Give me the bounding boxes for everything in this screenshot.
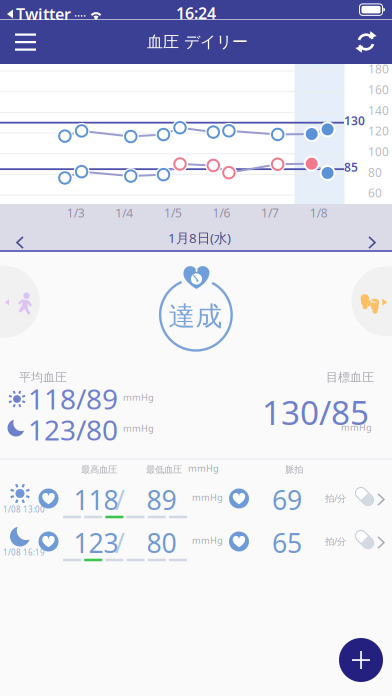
staticText: 血圧 デイリー <box>147 32 248 52</box>
staticText: 118 <box>73 482 118 517</box>
button[interactable]: 1/08 13:00 <box>0 480 392 523</box>
staticText: / <box>115 482 125 517</box>
staticText: 60 <box>368 185 382 201</box>
staticText: 1/7 <box>261 205 279 221</box>
staticText: 130/85 <box>262 390 369 434</box>
button[interactable]: Add reading <box>339 638 383 682</box>
staticText: mmHg <box>188 462 219 474</box>
staticText: 1/6 <box>212 205 230 221</box>
staticText: 1/5 <box>164 205 182 221</box>
staticText: 最低血圧 <box>146 464 182 475</box>
staticText: 1月8日(水) <box>168 229 231 247</box>
staticText: Twitter <box>16 3 71 25</box>
staticText: mmHg <box>123 422 154 434</box>
staticText: 85 <box>344 159 358 175</box>
staticText: 130 <box>344 113 365 129</box>
staticText: 100 <box>368 144 389 160</box>
staticText: 拍/分 <box>325 535 346 547</box>
button[interactable]: Next day <box>354 227 390 258</box>
staticText: mmHg <box>341 421 372 433</box>
staticText: 180 <box>368 61 389 77</box>
staticText: 1/08 16:19 <box>3 547 45 558</box>
staticText: 1/8 <box>310 205 328 221</box>
staticText: 65 <box>272 525 302 560</box>
staticText: 69 <box>272 482 302 517</box>
staticText: 80 <box>146 525 176 560</box>
staticText: 1/08 13:00 <box>3 504 45 515</box>
staticText: 123/80 <box>28 411 118 448</box>
staticText: mmHg <box>192 491 223 503</box>
staticText: 123 <box>73 525 118 560</box>
staticText: 1/3 <box>67 205 85 221</box>
staticText: 120 <box>368 123 389 139</box>
staticText: 89 <box>146 482 176 517</box>
staticText: 達成 <box>168 300 222 333</box>
staticText: / <box>115 525 125 560</box>
staticText: 80 <box>368 164 382 180</box>
button[interactable]: Previous day <box>2 227 38 258</box>
staticText: 118/89 <box>28 380 118 417</box>
staticText: mmHg <box>123 391 154 403</box>
staticText: 最高血圧 <box>81 464 117 475</box>
staticText: 160 <box>368 82 389 98</box>
button[interactable]: Sync <box>340 20 392 64</box>
staticText: 16:24 <box>176 2 216 24</box>
staticText: 拍/分 <box>325 492 346 504</box>
staticText: 目標血圧 <box>326 370 374 385</box>
staticText: 1/4 <box>115 205 133 221</box>
staticText: 平均血圧 <box>19 370 67 385</box>
staticText: .... <box>74 4 86 20</box>
staticText: mmHg <box>192 534 223 546</box>
button[interactable]: Menu <box>0 20 51 64</box>
staticText: 脈拍 <box>285 464 303 475</box>
button[interactable]: 1/08 16:19 <box>0 523 392 566</box>
staticText: 140 <box>368 102 389 118</box>
